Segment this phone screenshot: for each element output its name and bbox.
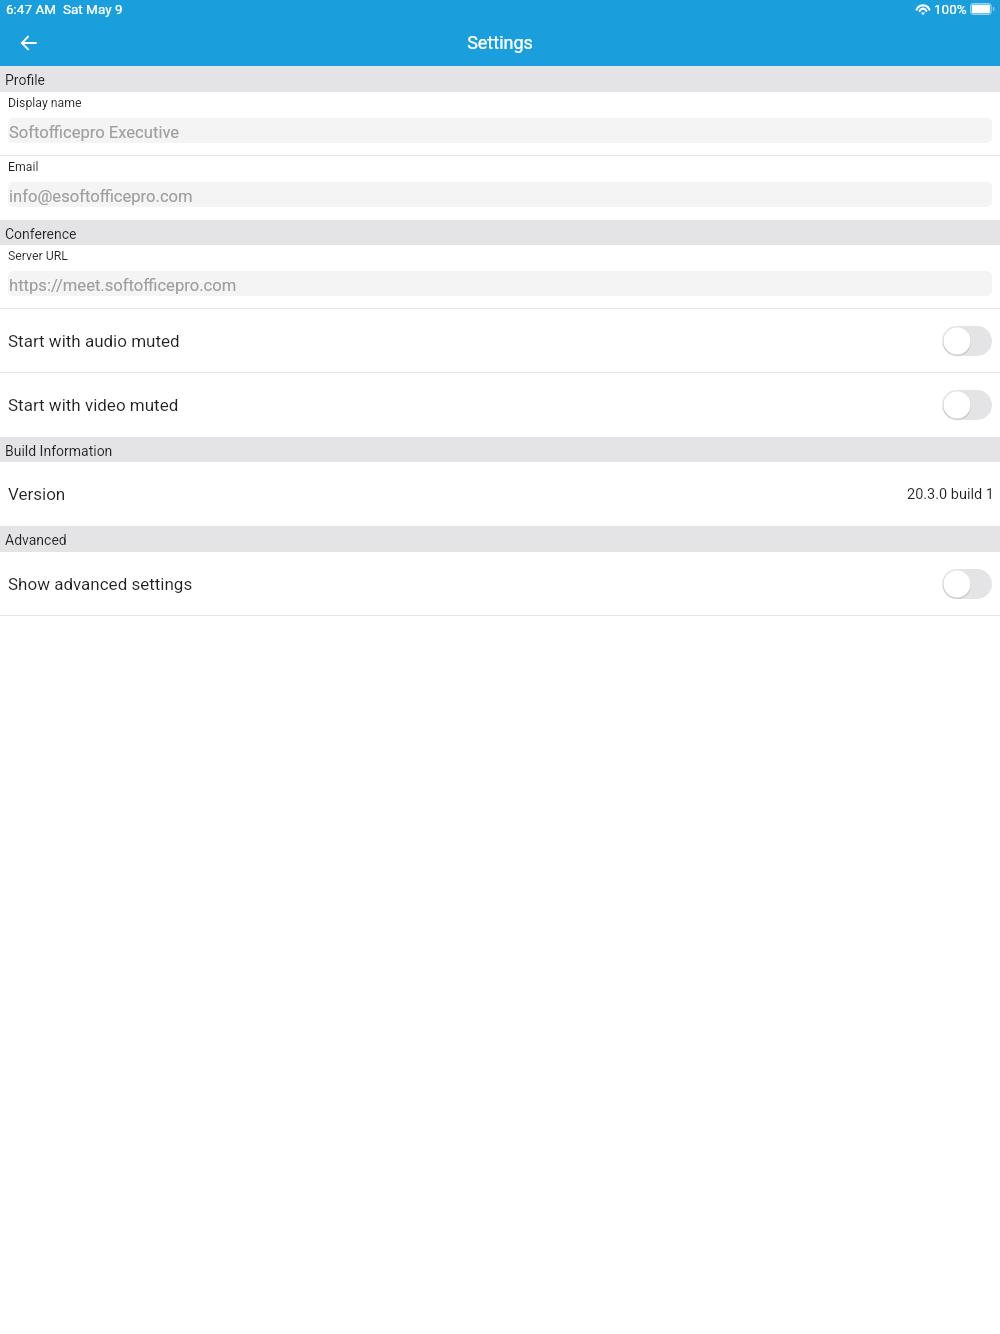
staticText: 100% (934, 1, 967, 17)
staticText: Server URL (8, 249, 68, 263)
staticText: Advanced (5, 532, 67, 548)
button[interactable]: Softofficepro Executive (8, 118, 992, 143)
staticText: Sat May 9 (63, 1, 123, 17)
staticText: Profile (5, 72, 46, 88)
staticText: Conference (5, 226, 77, 242)
button[interactable]: https://meet.softofficepro.com (8, 271, 992, 296)
staticText: Version (8, 484, 66, 504)
staticText: Start with audio muted (8, 331, 180, 351)
staticText: Display name (8, 96, 82, 110)
staticText: info@esoftofficepro.com (9, 187, 193, 206)
staticText: Settings (467, 32, 533, 53)
button[interactable]: info@esoftofficepro.com (8, 182, 992, 207)
staticText: 6:47 AM (6, 1, 56, 17)
button[interactable]: Start with audio muted (0, 309, 1000, 372)
staticText: Email (8, 160, 39, 174)
button[interactable]: Start with video muted (0, 373, 1000, 437)
button[interactable]: Back (7, 23, 50, 66)
staticText: Start with video muted (8, 395, 179, 415)
button[interactable]: Version (0, 462, 1000, 526)
staticText: Softofficepro Executive (9, 123, 180, 142)
staticText: Build Information (5, 443, 113, 459)
staticText: 20.3.0 build 1 (907, 486, 994, 503)
staticText: Show advanced settings (8, 574, 193, 594)
button[interactable]: Show advanced settings (0, 552, 1000, 615)
staticText: https://meet.softofficepro.com (9, 276, 237, 295)
